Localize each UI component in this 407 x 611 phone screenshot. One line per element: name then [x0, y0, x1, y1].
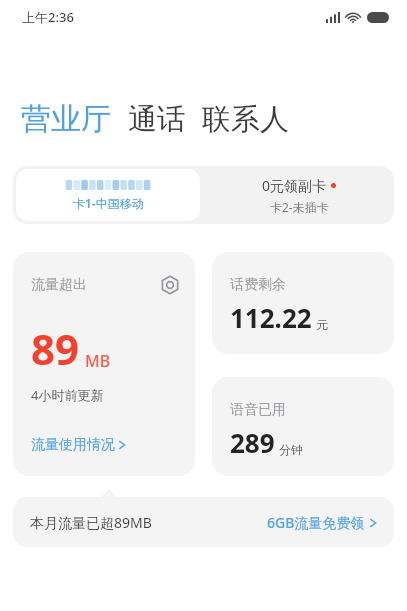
button[interactable]: 卡1-中国移动 [16, 169, 200, 221]
staticText: 112.22 [230, 300, 312, 335]
button[interactable]: 语音已用 [212, 377, 394, 476]
staticText: 289 [230, 425, 275, 460]
staticText: 营业厅 [21, 100, 111, 138]
button[interactable]: 营业厅 [21, 100, 111, 138]
staticText: 89 [31, 320, 80, 377]
button[interactable]: 0元领副卡 [203, 166, 394, 224]
button[interactable]: 话费剩余 [212, 252, 394, 354]
button[interactable]: 通话 [128, 101, 186, 138]
staticText: 元 [316, 317, 328, 332]
button[interactable]: 联系人 [202, 101, 289, 138]
button[interactable]: 流量超出 [13, 252, 195, 476]
staticText: 流量超出 [31, 276, 87, 294]
staticText: MB [85, 350, 111, 372]
button[interactable]: 流量使用情况 [31, 436, 126, 454]
button[interactable]: 设置 [159, 274, 181, 296]
staticText: 分钟 [279, 442, 303, 457]
staticText: 本月流量已超89MB [30, 513, 152, 532]
staticText: 卡1-中国移动 [73, 195, 144, 211]
button[interactable]: 本月流量已超89MB [13, 497, 394, 547]
staticText: 语音已用 [230, 401, 286, 419]
staticText: 4小时前更新 [31, 386, 104, 404]
staticText: 话费剩余 [230, 276, 286, 294]
staticText: 流量使用情况 [31, 436, 115, 454]
staticText: 通话 [128, 101, 186, 138]
staticText: 0元领副卡 [262, 176, 327, 195]
staticText: 6GB流量免费领 [267, 513, 365, 532]
staticText: 卡2-未插卡 [270, 199, 329, 215]
staticText: 上午2:36 [22, 8, 74, 26]
staticText: 联系人 [202, 101, 289, 138]
